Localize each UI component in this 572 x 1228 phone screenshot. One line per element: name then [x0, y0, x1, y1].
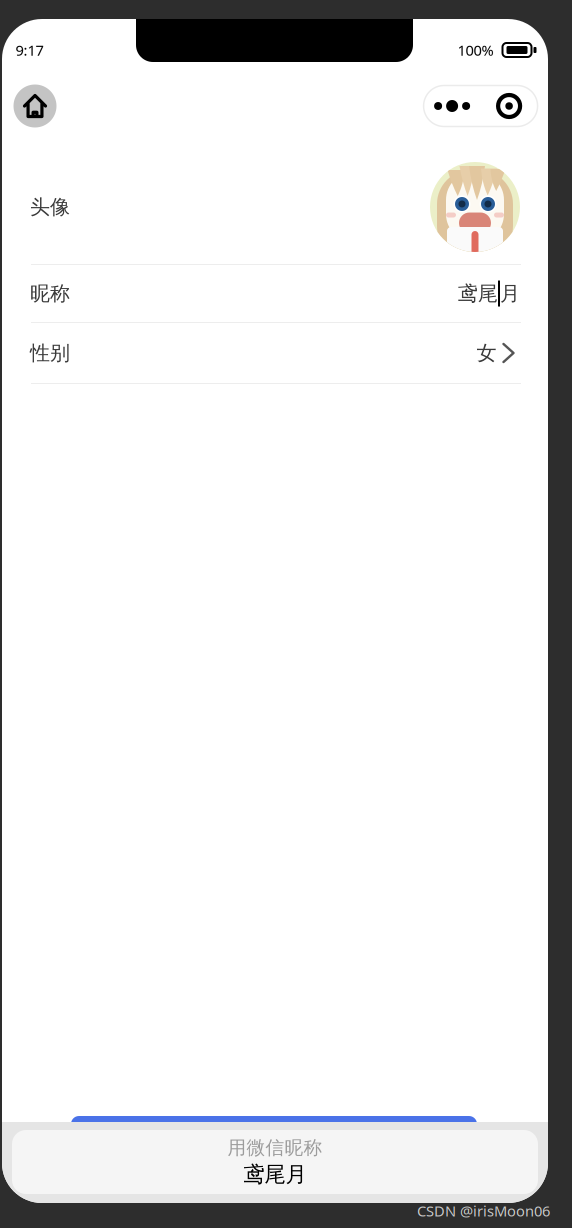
button[interactable] — [71, 1116, 477, 1188]
staticText: 鸢尾 — [458, 281, 498, 306]
button[interactable]: Home — [13, 84, 56, 127]
button[interactable]: 昵称 — [2, 265, 548, 322]
staticText: 9:17 — [15, 40, 43, 60]
staticText: CSDN @irisMoon06 — [417, 1201, 550, 1220]
staticText: 鸢尾月 — [243, 1161, 306, 1188]
staticText: 100% — [457, 40, 493, 60]
staticText: 女 — [476, 341, 496, 365]
staticText: 用微信昵称 — [227, 1136, 322, 1159]
button[interactable]: 性别 — [2, 323, 548, 383]
button[interactable]: 用微信昵称 — [12, 1130, 538, 1194]
staticText: 月 — [500, 281, 520, 306]
button[interactable]: Close — [481, 85, 538, 126]
button[interactable]: 头像 — [2, 150, 548, 264]
staticText: 头像 — [30, 195, 70, 219]
staticText: 昵称 — [30, 281, 70, 306]
staticText: 性别 — [30, 341, 70, 365]
button[interactable]: More — [424, 85, 481, 126]
